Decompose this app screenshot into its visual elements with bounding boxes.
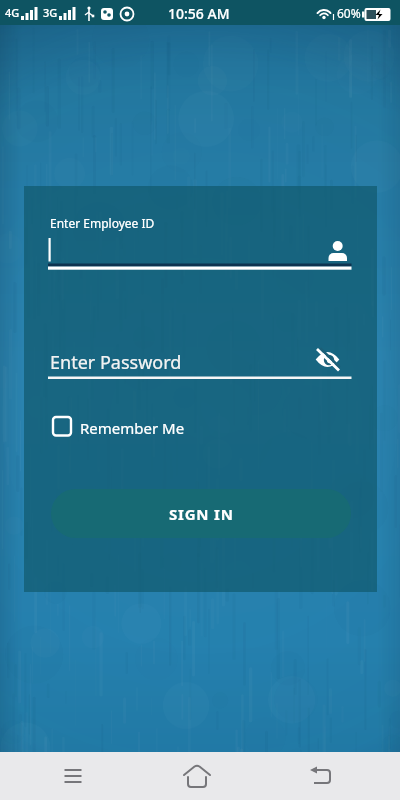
staticText: 3G [43,5,58,20]
staticText: 4G [5,5,20,20]
button[interactable] [297,752,345,800]
button[interactable] [48,234,354,270]
staticText: 10:56 AM [168,4,230,23]
button[interactable]: Enter Password [50,350,182,375]
staticText: SIGN IN [169,504,234,524]
button[interactable] [49,752,97,800]
staticText: 60% [337,5,361,21]
button[interactable] [173,752,221,800]
staticText: Remember Me [80,418,185,438]
staticText: Enter Employee ID [50,215,155,231]
button[interactable] [310,343,346,376]
button[interactable]: SIGN IN [51,489,351,538]
button[interactable] [50,414,190,438]
